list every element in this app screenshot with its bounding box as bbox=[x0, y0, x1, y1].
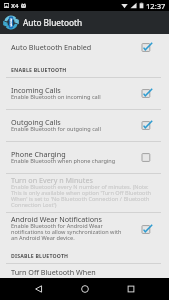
staticText: Android Wear Notifications bbox=[11, 216, 102, 224]
button[interactable]: Phone Charging bbox=[0, 142, 169, 173]
staticText: 12:37 bbox=[146, 1, 166, 11]
staticText: Turn Off Bluetooth When bbox=[11, 269, 153, 277]
button[interactable]: Android Wear Notifications bbox=[0, 213, 169, 245]
button[interactable]: Toggle bbox=[142, 120, 153, 131]
staticText: DISABLE BLUETOOTH bbox=[11, 252, 69, 259]
staticText: Auto Bluetooth bbox=[23, 17, 83, 28]
staticText: ENABLE BLUETOOTH bbox=[11, 66, 67, 73]
button[interactable]: Home bbox=[75, 279, 95, 299]
staticText: Enable Bluetooth when phone charging bbox=[11, 159, 116, 165]
staticText: Auto Bluetooth Enabled bbox=[11, 44, 128, 52]
staticText: Phone Charging bbox=[11, 151, 66, 159]
staticText: Enable Bluetooth for Android Wear notifi… bbox=[11, 224, 128, 242]
button[interactable]: Outgoing Calls bbox=[0, 110, 169, 141]
button[interactable]: Turn on Every n Minutes bbox=[0, 174, 169, 212]
staticText: Enable Bluetooth every N number of minut… bbox=[11, 185, 153, 209]
staticText: Turn on Every n Minutes bbox=[11, 177, 93, 185]
staticText: Incoming Calls bbox=[11, 87, 61, 95]
button[interactable]: Incoming Calls bbox=[0, 78, 169, 109]
button[interactable]: Toggle bbox=[142, 42, 153, 53]
button[interactable]: Back bbox=[29, 279, 49, 299]
button[interactable]: Turn Off Bluetooth When bbox=[0, 264, 169, 282]
button[interactable]: Recent apps bbox=[121, 279, 141, 299]
staticText: Outgoing Calls bbox=[11, 119, 61, 127]
button[interactable]: Auto Bluetooth Enabled bbox=[0, 34, 169, 59]
button[interactable]: Toggle bbox=[142, 88, 153, 99]
staticText: Enable Bluetooth on incoming call bbox=[11, 95, 101, 101]
button[interactable]: Toggle bbox=[142, 152, 153, 163]
staticText: Enable Bluetooth for outgoing call bbox=[11, 127, 101, 133]
button[interactable]: Toggle bbox=[142, 224, 153, 235]
staticText: X4 bbox=[11, 2, 19, 10]
